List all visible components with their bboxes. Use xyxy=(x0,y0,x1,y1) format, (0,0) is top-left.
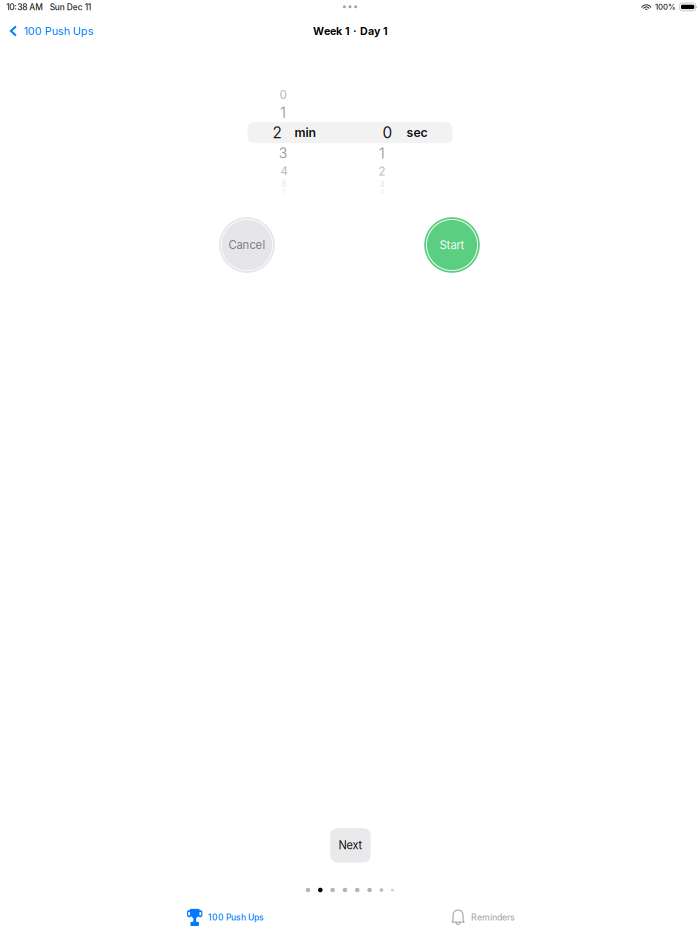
staticText: 4 xyxy=(380,188,384,195)
staticText: 2 xyxy=(272,123,281,142)
staticText: Reminders xyxy=(471,912,515,923)
button[interactable]: Cancel xyxy=(218,216,276,274)
staticText: Next xyxy=(338,839,362,852)
staticText: 10:38 AM xyxy=(6,2,43,12)
staticText: 100 Push Ups xyxy=(24,24,94,38)
button[interactable]: 100 Push Ups xyxy=(187,909,264,926)
staticText: 4 xyxy=(280,164,287,178)
button[interactable]: Next xyxy=(330,828,371,862)
staticText: 6 xyxy=(282,188,286,195)
staticText: 3 xyxy=(279,145,288,162)
staticText: 0 xyxy=(279,87,287,102)
staticText: Sun Dec 11 xyxy=(50,2,91,12)
staticText: min xyxy=(294,125,316,140)
staticText: 1 xyxy=(379,145,385,162)
button[interactable]: 100 Push Ups xyxy=(9,24,94,38)
staticText: Start xyxy=(439,238,464,252)
staticText: 100 Push Ups xyxy=(208,912,264,922)
staticText: 5 xyxy=(281,179,286,188)
staticText: 1 xyxy=(280,104,286,121)
button[interactable]: Reminders xyxy=(451,910,515,925)
staticText: Week 1 · Day 1 xyxy=(313,24,388,37)
staticText: Cancel xyxy=(228,238,265,252)
button[interactable]: Start xyxy=(423,216,481,274)
staticText: 2 xyxy=(378,164,385,178)
staticText: 3 xyxy=(379,179,384,189)
staticText: sec xyxy=(406,125,427,140)
staticText: 0 xyxy=(382,123,392,142)
staticText: 100% xyxy=(655,2,676,12)
